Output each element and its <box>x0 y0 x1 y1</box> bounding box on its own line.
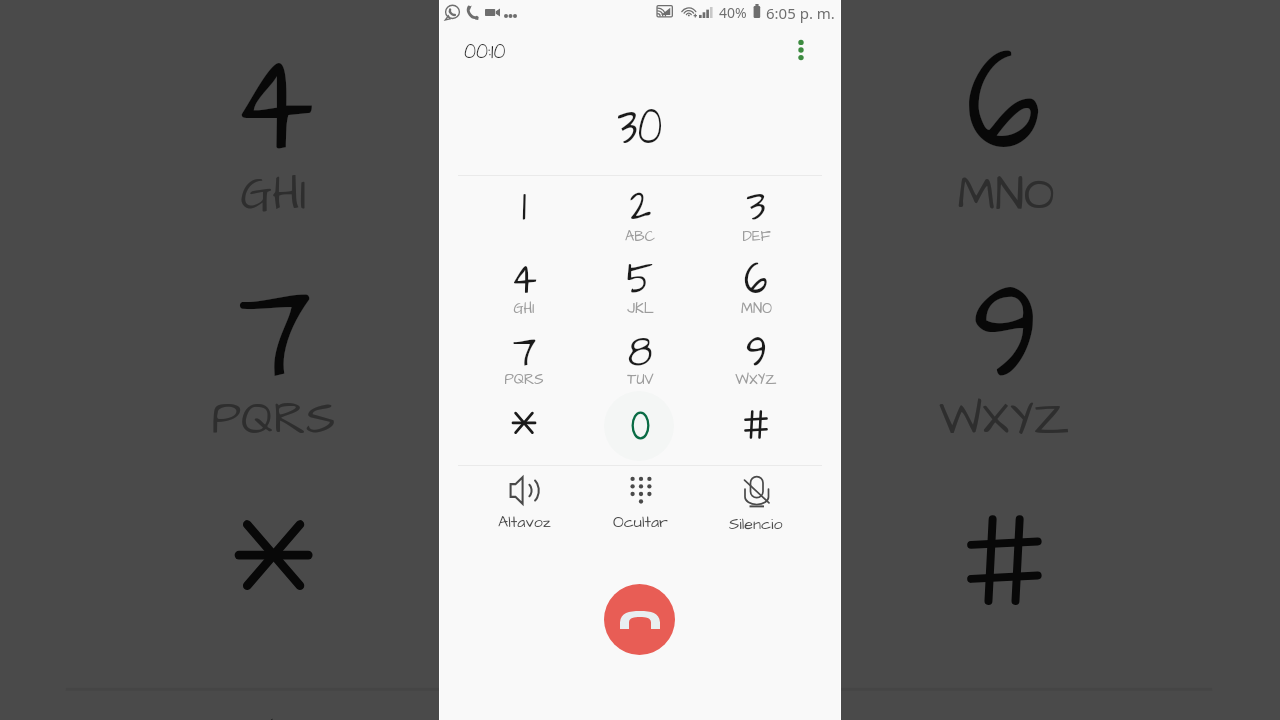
staticText: WXYZ <box>735 370 777 390</box>
staticText: 6 <box>967 1 1042 206</box>
button[interactable]: Key 9 <box>716 327 796 393</box>
button[interactable]: More options <box>781 30 821 70</box>
staticText: Altavoz <box>498 511 551 533</box>
staticText: MNO <box>957 165 1055 228</box>
staticText: 7 <box>239 231 312 436</box>
staticText: TUV <box>627 370 654 390</box>
button[interactable]: Mute <box>711 476 801 534</box>
button[interactable]: Key 7 <box>484 327 564 393</box>
staticText: 6:05 p. m. <box>766 3 835 23</box>
staticText: 8 <box>628 320 653 385</box>
staticText: JKL <box>598 165 683 228</box>
button[interactable]: Key 5 <box>600 254 680 320</box>
button[interactable]: Key 3 <box>716 181 796 247</box>
button[interactable]: Key 4 <box>484 254 564 320</box>
staticText: 2 <box>630 174 651 239</box>
staticText: MNO <box>741 299 772 319</box>
staticText: PQRS <box>211 388 337 451</box>
staticText: 9 <box>746 320 767 385</box>
button[interactable]: Key 8 <box>600 327 680 393</box>
staticText: WXYZ <box>938 388 1071 451</box>
button[interactable]: Key * <box>484 399 564 465</box>
button[interactable]: Key 1 <box>484 181 564 247</box>
staticText: JKL <box>627 299 654 319</box>
staticText: 00:10 <box>464 36 506 67</box>
staticText: 3 <box>746 174 766 239</box>
staticText: 5 <box>626 247 654 312</box>
staticText: 8 <box>601 231 680 436</box>
staticText: TUV <box>598 388 683 451</box>
button[interactable]: Key 6 <box>716 254 796 320</box>
staticText: Silencio <box>729 513 783 534</box>
staticText: 4 <box>511 247 537 312</box>
staticText: DEF <box>742 227 771 247</box>
staticText: GHI <box>513 299 535 319</box>
staticText: Ocultar <box>613 511 668 533</box>
staticText: 30 <box>618 88 662 148</box>
staticText: 5 <box>596 1 682 206</box>
staticText: 9 <box>972 231 1040 436</box>
button[interactable]: Key 2 <box>600 181 680 247</box>
staticText: 1 <box>522 174 527 239</box>
staticText: 4 <box>233 1 314 206</box>
staticText: 7 <box>513 320 536 385</box>
staticText: PQRS <box>504 370 544 390</box>
button[interactable]: Key 0 <box>600 399 680 465</box>
staticText: GHI <box>239 165 308 228</box>
staticText: 6 <box>744 247 768 312</box>
button[interactable]: Hide keypad <box>595 476 685 534</box>
staticText: ABC <box>625 227 655 247</box>
button[interactable]: Speaker <box>479 476 569 534</box>
button[interactable]: Key # <box>716 399 796 465</box>
button[interactable]: End call <box>604 584 675 655</box>
staticText: 40% <box>719 3 747 22</box>
